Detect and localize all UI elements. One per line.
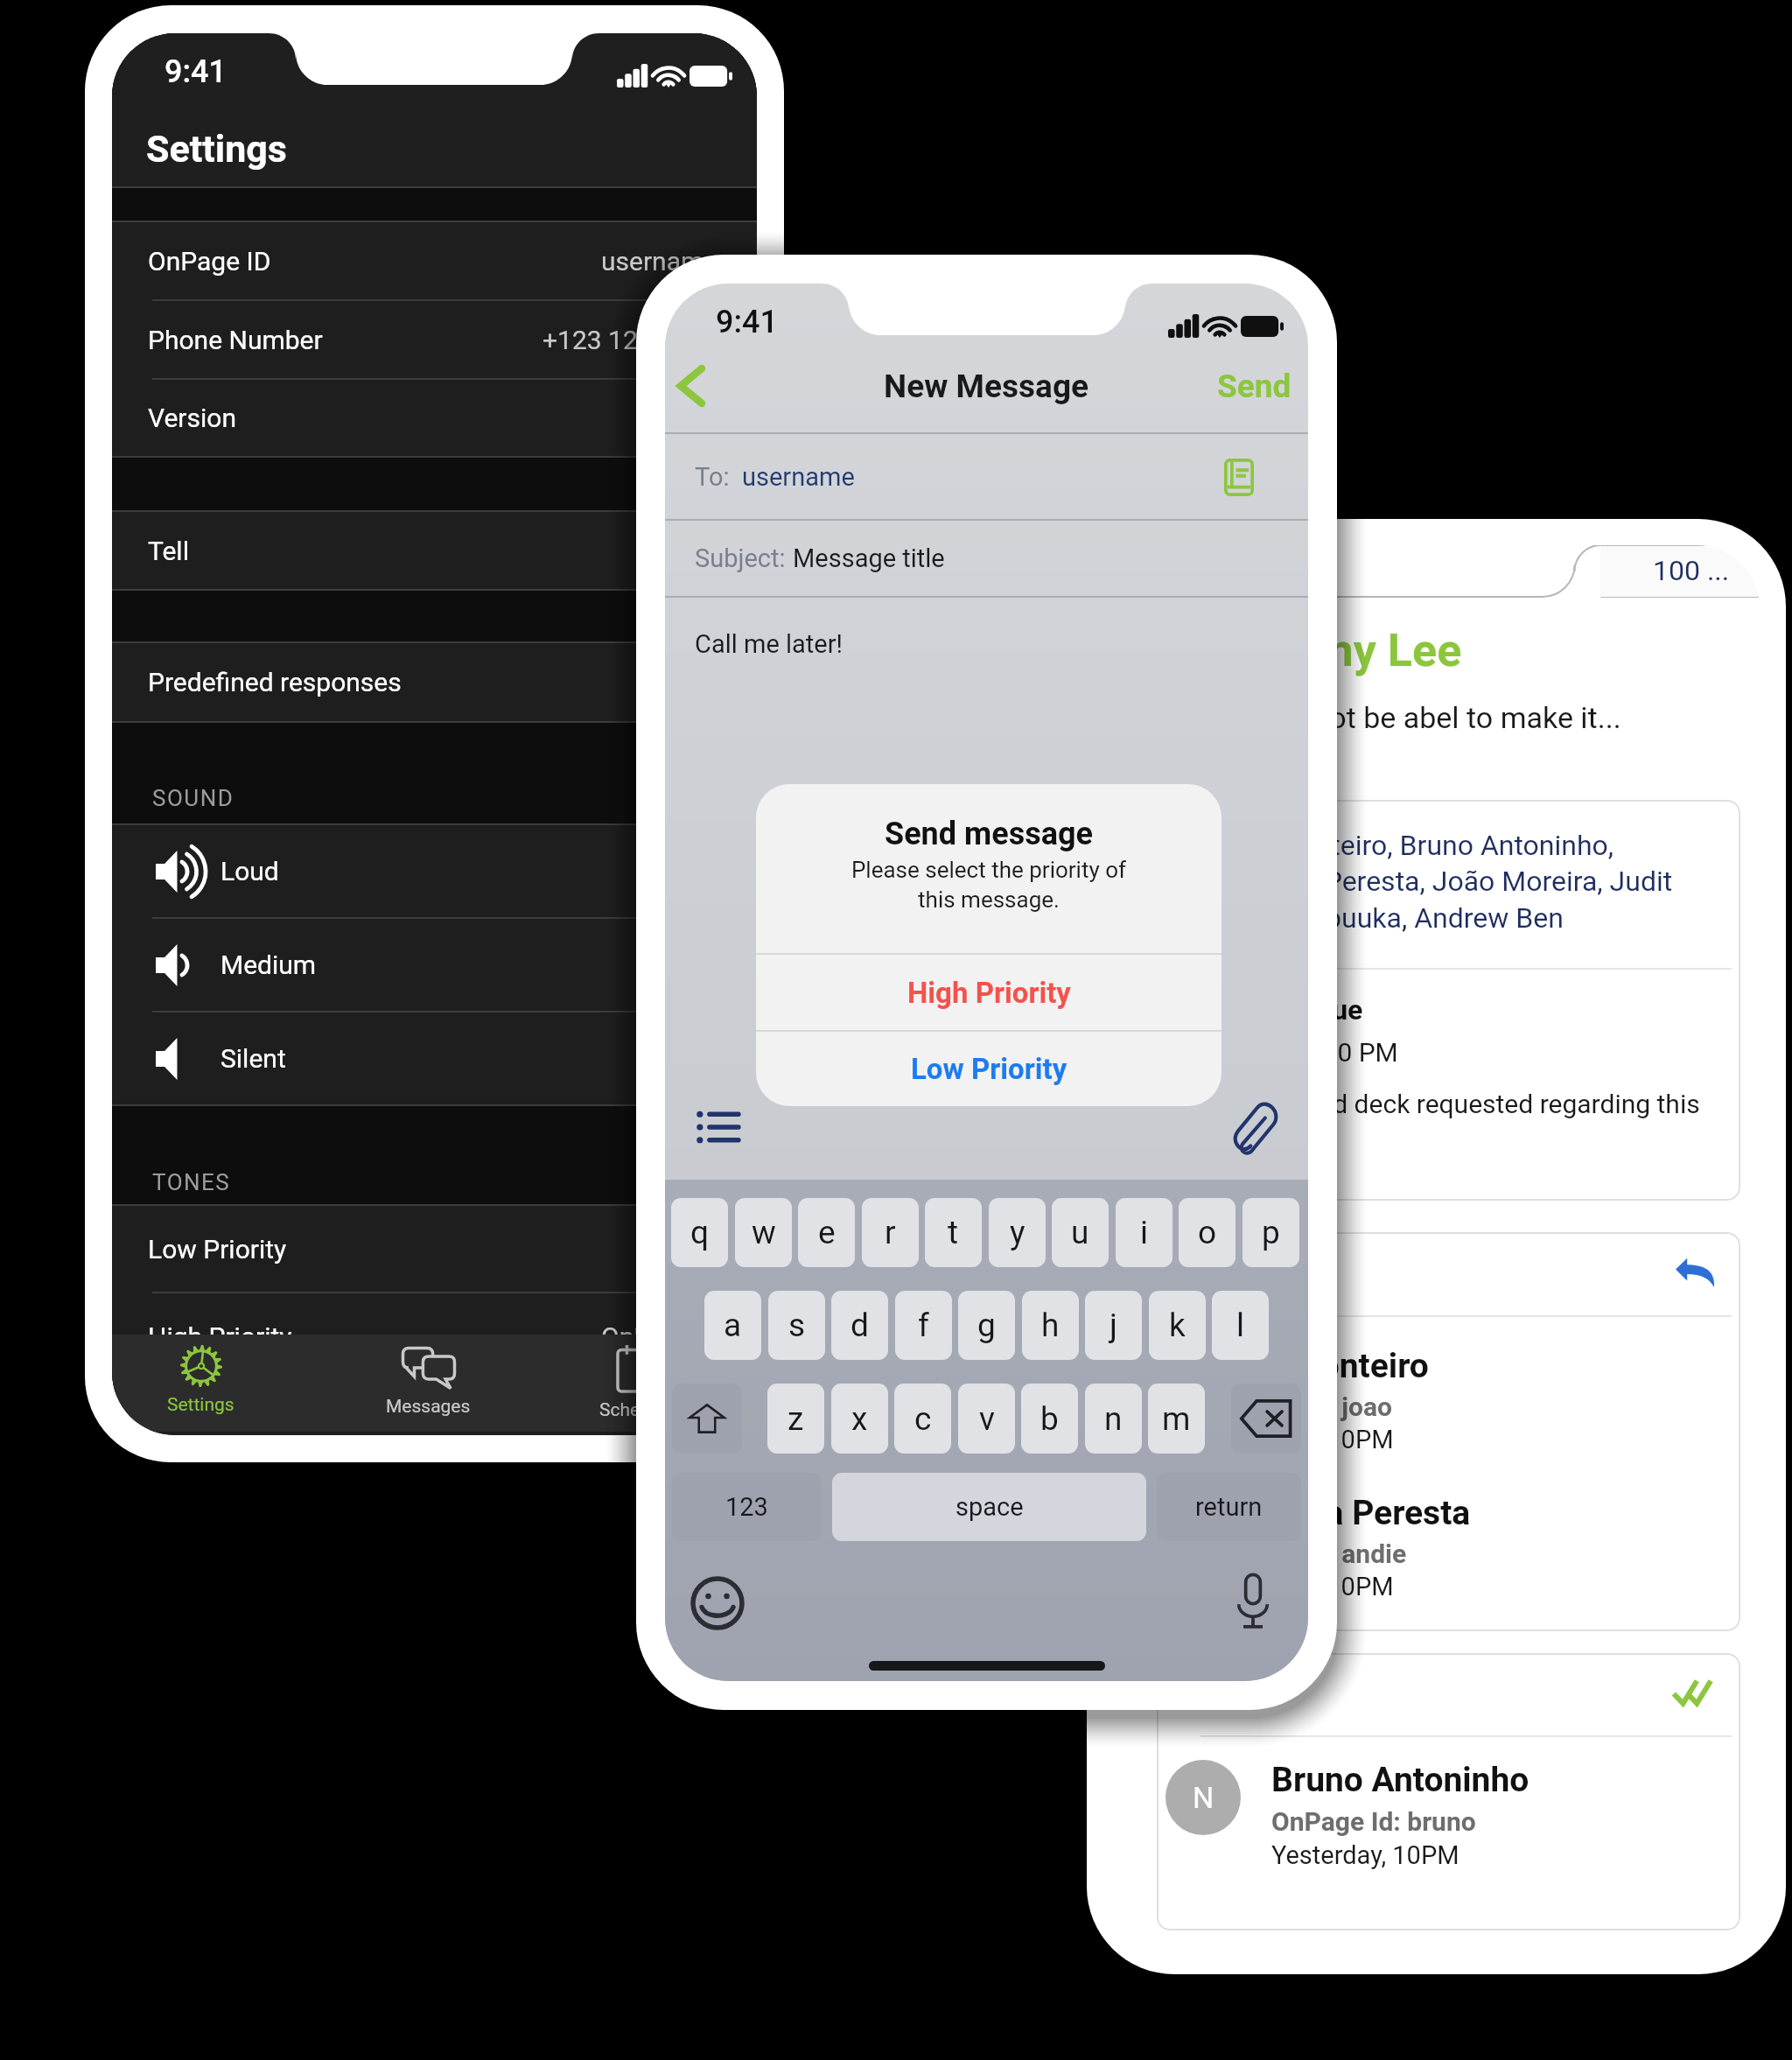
staticText: username — [601, 246, 718, 277]
button[interactable]: OnPage ID — [112, 222, 757, 299]
button[interactable]: Settings — [112, 1335, 297, 1432]
button[interactable]: Messages — [332, 1335, 524, 1432]
button[interactable]: Schedule — [541, 1335, 733, 1432]
button[interactable]: Predefined responses — [112, 643, 757, 721]
button[interactable]: y — [989, 1198, 1046, 1267]
staticText: e — [818, 1214, 836, 1251]
button[interactable]: z — [767, 1384, 824, 1454]
button[interactable]: d — [831, 1291, 888, 1360]
staticText: Version — [148, 403, 236, 433]
staticText: 9:41 — [716, 304, 778, 340]
button[interactable]: q — [671, 1198, 728, 1267]
button[interactable]: High Priority — [756, 955, 1221, 1030]
button[interactable]: c — [894, 1384, 951, 1454]
button[interactable]: High Priority — [112, 1293, 757, 1379]
button[interactable]: Low Priority — [112, 1206, 757, 1292]
staticText: OnPage Id: joao — [1206, 1391, 1393, 1422]
button[interactable]: t — [925, 1198, 982, 1267]
button[interactable]: Send — [1217, 368, 1291, 405]
staticText: x — [851, 1400, 868, 1438]
staticText: 9:41 — [164, 53, 227, 90]
staticText: t — [948, 1214, 959, 1251]
button[interactable]: Joao Monteiro — [1157, 1232, 1740, 1631]
button[interactable]: b — [1021, 1384, 1078, 1454]
button[interactable]: Shift — [672, 1384, 742, 1454]
staticText: High Priority — [907, 976, 1071, 1010]
staticText: h — [1041, 1307, 1060, 1344]
staticText: z — [787, 1400, 804, 1438]
staticText: Please select the priority of this messa… — [844, 857, 1133, 913]
button[interactable]: Attach file — [1222, 1096, 1285, 1159]
button[interactable]: Silent — [112, 1012, 757, 1104]
button[interactable]: a — [704, 1291, 761, 1360]
staticText: v — [979, 1400, 995, 1438]
button[interactable]: Joao Monteiro, Bruno Antoninho, Andriana… — [1157, 800, 1740, 1201]
button[interactable]: i — [1116, 1198, 1172, 1267]
button[interactable]: Low Priority — [756, 1032, 1221, 1106]
button[interactable]: 123 — [672, 1473, 822, 1541]
button[interactable]: Tell — [112, 512, 757, 589]
button[interactable]: Predefined responses — [686, 1096, 749, 1159]
button[interactable]: Backspace — [1231, 1384, 1301, 1454]
button[interactable]: return — [1157, 1473, 1301, 1541]
button[interactable]: v — [958, 1384, 1015, 1454]
staticText: j — [1109, 1307, 1117, 1344]
button[interactable]: N — [1157, 1653, 1740, 1930]
staticText: SOUND — [152, 785, 234, 811]
button[interactable]: x — [831, 1384, 888, 1454]
staticText: Please send deck requested regarding thi… — [1206, 1089, 1731, 1157]
button[interactable]: Loud — [112, 825, 757, 917]
staticText: Predefined responses — [148, 667, 402, 697]
button[interactable]: Dictation — [1221, 1570, 1284, 1633]
button[interactable]: r — [862, 1198, 919, 1267]
staticText: n — [1104, 1400, 1123, 1438]
staticText: Settings — [167, 1394, 234, 1416]
staticText: f — [918, 1307, 929, 1344]
staticText: m — [1162, 1400, 1191, 1438]
staticText: Server Issue — [1206, 993, 1363, 1026]
staticText: Settings — [146, 127, 287, 171]
staticText: y — [1010, 1214, 1025, 1251]
button[interactable]: j — [1085, 1291, 1142, 1360]
staticText: Loud — [220, 856, 279, 886]
staticText: username — [742, 462, 855, 492]
button[interactable]: Version — [112, 380, 757, 456]
button[interactable]: g — [958, 1291, 1015, 1360]
button[interactable]: Medium — [112, 919, 757, 1011]
staticText: OnPage ID — [148, 246, 271, 277]
staticText: w — [752, 1214, 776, 1251]
staticText: r — [885, 1214, 896, 1251]
button[interactable]: Contacts — [1207, 445, 1271, 509]
staticText: c — [914, 1400, 932, 1438]
staticText: Jeremy Lee — [1223, 624, 1462, 677]
button[interactable]: Emoji keyboard — [686, 1572, 749, 1635]
staticText: Joao Monteiro — [1206, 1346, 1429, 1386]
button[interactable]: p — [1242, 1198, 1299, 1267]
staticText: Messages — [386, 1396, 471, 1418]
button[interactable]: m — [1148, 1384, 1205, 1454]
staticText: s — [788, 1307, 806, 1344]
button[interactable]: l — [1212, 1291, 1269, 1360]
staticText: l — [1236, 1307, 1244, 1344]
staticText: OnPage O — [601, 1321, 718, 1352]
button[interactable]: space — [832, 1473, 1146, 1541]
button[interactable]: s — [768, 1291, 825, 1360]
button[interactable]: o — [1179, 1198, 1235, 1267]
button[interactable]: w — [735, 1198, 792, 1267]
button[interactable]: Phone Number — [112, 301, 757, 378]
staticText: Send — [1217, 368, 1291, 405]
button[interactable]: Back — [665, 347, 728, 425]
staticText: High Priority — [148, 1321, 292, 1352]
staticText: u — [1071, 1214, 1089, 1251]
staticText: Send message — [885, 816, 1094, 852]
staticText: OnPage Id: andie — [1206, 1538, 1407, 1569]
button[interactable]: h — [1022, 1291, 1079, 1360]
button[interactable]: u — [1052, 1198, 1109, 1267]
button[interactable]: k — [1149, 1291, 1206, 1360]
button[interactable]: e — [798, 1198, 855, 1267]
staticText: +123 123 4567 — [542, 325, 718, 355]
staticText: I will not be abel to make it... — [1246, 700, 1621, 735]
button[interactable]: f — [895, 1291, 952, 1360]
button[interactable]: n — [1085, 1384, 1142, 1454]
staticText: To: — [695, 462, 730, 492]
